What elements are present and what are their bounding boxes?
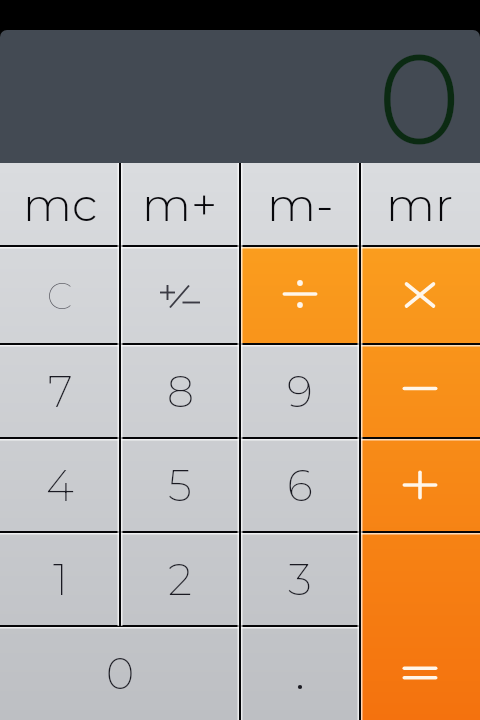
staticText: 7 bbox=[48, 365, 73, 417]
button[interactable]: 7 bbox=[0, 344, 120, 438]
button[interactable]: equals bbox=[360, 532, 480, 720]
staticText: 0 bbox=[377, 30, 462, 153]
staticText: 4 bbox=[46, 459, 74, 511]
button[interactable]: 5 bbox=[120, 438, 240, 532]
button[interactable]: mc bbox=[0, 163, 120, 246]
staticText: 3 bbox=[288, 553, 312, 605]
staticText: 0 bbox=[106, 647, 135, 699]
staticText: 9 bbox=[287, 365, 313, 417]
button[interactable]: 3 bbox=[240, 532, 360, 626]
button[interactable]: 8 bbox=[120, 344, 240, 438]
button[interactable]: multiply bbox=[360, 246, 480, 344]
staticText: mr bbox=[386, 176, 454, 232]
button[interactable]: 6 bbox=[240, 438, 360, 532]
button[interactable]: decimal point bbox=[240, 626, 360, 720]
staticText: m+ bbox=[142, 176, 218, 232]
staticText: mc bbox=[23, 176, 98, 232]
button[interactable]: C bbox=[0, 246, 120, 344]
staticText: m- bbox=[267, 176, 334, 232]
button[interactable]: 9 bbox=[240, 344, 360, 438]
button[interactable]: 4 bbox=[0, 438, 120, 532]
button[interactable]: subtract bbox=[360, 344, 480, 438]
button[interactable]: divide bbox=[240, 246, 360, 344]
button[interactable]: m- bbox=[240, 163, 360, 246]
button[interactable]: m+ bbox=[120, 163, 240, 246]
button[interactable]: 1 bbox=[0, 532, 120, 626]
staticText: 6 bbox=[287, 459, 313, 511]
staticText: 8 bbox=[167, 365, 194, 417]
button[interactable]: plus minus bbox=[120, 246, 240, 344]
button[interactable]: 2 bbox=[120, 532, 240, 626]
button[interactable]: 0 bbox=[0, 626, 240, 720]
button[interactable]: mr bbox=[360, 163, 480, 246]
staticText: 1 bbox=[53, 553, 68, 605]
staticText: 5 bbox=[168, 459, 192, 511]
staticText: C bbox=[47, 274, 73, 318]
button[interactable]: add bbox=[360, 438, 480, 532]
staticText: 2 bbox=[168, 553, 192, 605]
